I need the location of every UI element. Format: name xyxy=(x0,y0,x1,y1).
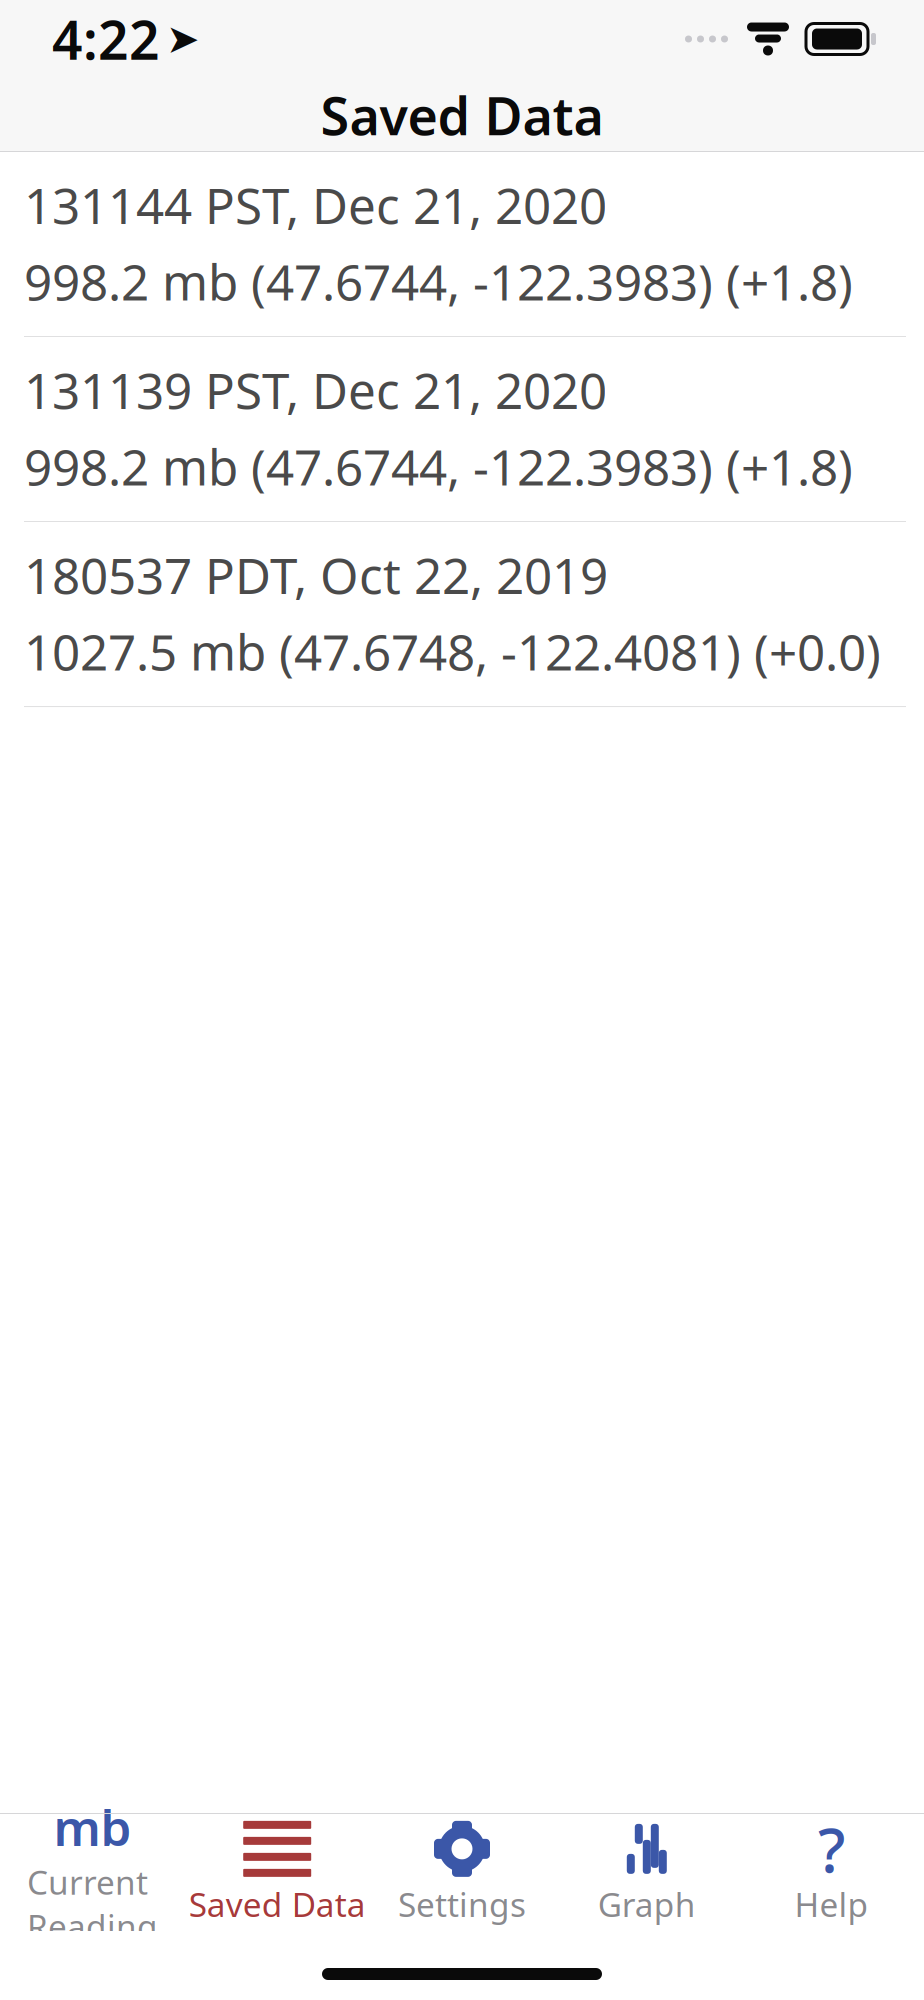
button[interactable]: Saved Data xyxy=(185,1810,370,1934)
button[interactable]: ? xyxy=(739,1810,924,1934)
staticText: 1027.5 mb (47.6748, -122.4081) (+0.0) xyxy=(24,619,881,684)
staticText: ? xyxy=(818,1808,845,1889)
button[interactable]: 180537 PDT, Oct 22, 2019 xyxy=(0,522,924,706)
staticText: 180537 PDT, Oct 22, 2019 xyxy=(24,542,608,607)
button[interactable]: mb xyxy=(0,1788,185,1956)
staticText: 131144 PST, Dec 21, 2020 xyxy=(24,172,607,237)
staticText: Saved Data xyxy=(189,1882,366,1926)
button[interactable]: 131139 PST, Dec 21, 2020 xyxy=(0,337,924,521)
staticText: Settings xyxy=(398,1882,526,1926)
button[interactable]: 131144 PST, Dec 21, 2020 xyxy=(0,152,924,336)
staticText: Help xyxy=(795,1882,869,1926)
button[interactable]: Settings xyxy=(370,1810,554,1934)
staticText: Graph xyxy=(598,1882,696,1926)
staticText: ➤ xyxy=(166,16,200,62)
staticText: 998.2 mb (47.6744, -122.3983) (+1.8) xyxy=(24,248,853,314)
staticText: 4:22 xyxy=(52,4,160,74)
button[interactable]: Graph xyxy=(554,1810,739,1934)
staticText: Current Reading xyxy=(27,1860,158,1948)
staticText: mb xyxy=(53,1794,131,1859)
staticText: Saved Data xyxy=(320,80,603,150)
staticText: 998.2 mb (47.6744, -122.3983) (+1.8) xyxy=(24,433,853,499)
staticText: 131139 PST, Dec 21, 2020 xyxy=(24,357,607,422)
